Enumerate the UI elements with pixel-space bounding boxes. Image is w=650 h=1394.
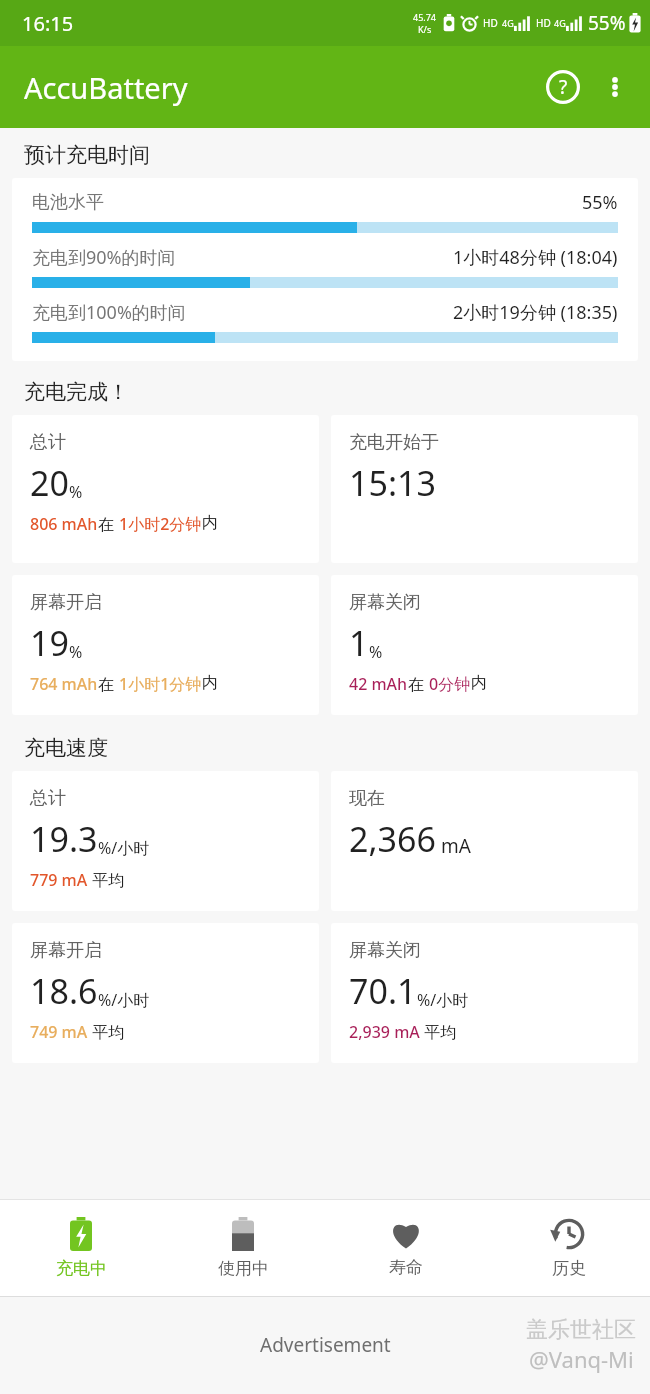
staticText: 1小时48分钟 (18:04) [453,245,618,270]
staticText: 42 mAh [349,673,408,695]
staticText: % [369,641,383,663]
button[interactable]: 充电中 [0,1209,162,1287]
staticText: 屏幕开启 [30,591,102,614]
button[interactable]: 屏幕开启 [12,923,319,1063]
staticText: % [69,641,83,663]
button[interactable]: 寿命 [324,1210,487,1286]
staticText: 总计 [30,431,66,454]
button[interactable]: More options [590,62,640,112]
button[interactable]: 历史 [487,1209,650,1287]
button[interactable]: Help [536,60,590,114]
staticText: 平均 [420,1021,457,1043]
staticText: 内 [471,673,487,693]
staticText: mA [436,833,471,859]
staticText: 总计 [30,787,66,810]
staticText: 19.3 [30,816,98,862]
staticText: 内 [202,513,218,533]
staticText: 电池水平 [32,191,582,214]
staticText: 充电速度 [24,735,108,761]
staticText: 充电到90%的时间 [32,245,453,270]
button[interactable]: 总计 [12,771,319,911]
staticText: 屏幕关闭 [349,591,421,614]
button[interactable]: 电池水平 [12,178,638,361]
button[interactable]: 屏幕关闭 [331,575,638,715]
staticText: 2小时19分钟 (18:35) [453,300,618,325]
staticText: 19 [30,620,69,666]
staticText: 4G [554,17,566,29]
staticText: @Vanq-Mi [529,1344,634,1374]
staticText: 20 [30,460,69,506]
staticText: 55% [588,10,626,36]
staticText: 18.6 [30,968,98,1014]
staticText: %/小时 [98,989,150,1011]
staticText: 在 [98,673,119,695]
staticText: 盖乐世社区 [526,1316,636,1344]
staticText: % [69,481,83,503]
staticText: ? [559,74,568,100]
staticText: 15:13 [349,460,436,506]
staticText: 充电中 [56,1258,107,1279]
staticText: 806 mAh [30,513,98,535]
staticText: 16:15 [22,10,74,37]
staticText: 历史 [552,1258,586,1279]
staticText: 1小时1分钟 [119,673,202,695]
staticText: 现在 [349,787,385,810]
staticText: %/小时 [98,837,150,859]
staticText: %/小时 [417,989,469,1011]
button[interactable]: 屏幕开启 [12,575,319,715]
button[interactable]: 充电开始于 [331,415,638,563]
staticText: 764 mAh [30,673,98,695]
staticText: 预计充电时间 [24,142,150,168]
staticText: 充电到100%的时间 [32,300,453,325]
staticText: K/s [418,23,432,35]
staticText: 使用中 [218,1258,269,1279]
button[interactable]: 屏幕关闭 [331,923,638,1063]
staticText: HD [536,16,551,30]
staticText: 屏幕关闭 [349,939,421,962]
button[interactable]: 总计 [12,415,319,563]
staticText: 在 [408,673,429,695]
staticText: Advertisement [260,1332,391,1358]
button[interactable]: 使用中 [162,1209,324,1287]
staticText: HD [483,16,498,30]
staticText: 4G [502,17,514,29]
staticText: 内 [202,673,218,693]
staticText: 2,366 [349,816,436,862]
staticText: 平均 [88,1021,125,1043]
staticText: 0分钟 [429,673,471,695]
button[interactable]: 现在 [331,771,638,911]
staticText: 749 mA [30,1021,88,1043]
staticText: 70.1 [349,968,417,1014]
staticText: 充电完成！ [24,379,129,405]
staticText: 779 mA [30,869,88,891]
staticText: 55% [582,190,618,215]
staticText: 2,939 mA [349,1021,420,1043]
staticText: AccuBattery [24,68,188,107]
staticText: 1小时2分钟 [119,513,202,535]
staticText: 在 [98,513,119,535]
staticText: 平均 [88,869,125,891]
staticText: 充电开始于 [349,431,439,454]
staticText: 45.74 [413,11,437,23]
staticText: 1 [349,620,369,666]
staticText: 寿命 [389,1257,423,1278]
staticText: 屏幕开启 [30,939,102,962]
